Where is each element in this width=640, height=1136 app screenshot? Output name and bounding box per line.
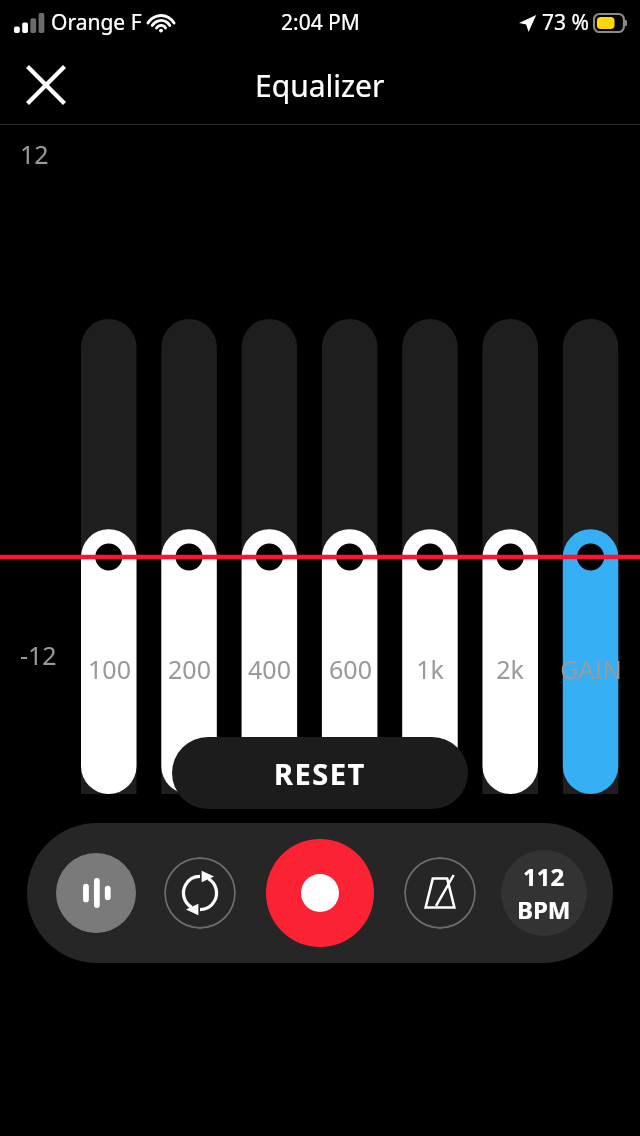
staticText: GAIN xyxy=(560,652,622,686)
staticText: 112 xyxy=(523,860,565,893)
staticText: Orange F xyxy=(51,8,142,37)
staticText: 400 xyxy=(248,652,291,686)
button[interactable]: 112 xyxy=(501,850,587,936)
staticText: 100 xyxy=(88,652,131,686)
button[interactable]: Equalizer xyxy=(56,853,136,933)
staticText: 73 % xyxy=(542,8,589,37)
button[interactable]: Record xyxy=(266,839,374,947)
staticText: 600 xyxy=(329,652,372,686)
staticText: RESET xyxy=(274,754,366,793)
staticText: 2:04 PM xyxy=(281,8,360,37)
staticText: Equalizer xyxy=(255,65,385,106)
button[interactable]: RESET xyxy=(172,737,468,809)
staticText: BPM xyxy=(517,893,571,926)
button[interactable]: Metronome xyxy=(404,857,476,929)
button[interactable]: Loop xyxy=(164,857,236,929)
button[interactable]: Close xyxy=(18,57,74,113)
staticText: 12 xyxy=(20,137,49,171)
staticText: 1k xyxy=(416,652,444,686)
staticText: -12 xyxy=(20,638,57,672)
staticText: 200 xyxy=(168,652,211,686)
staticText: 2k xyxy=(496,652,524,686)
